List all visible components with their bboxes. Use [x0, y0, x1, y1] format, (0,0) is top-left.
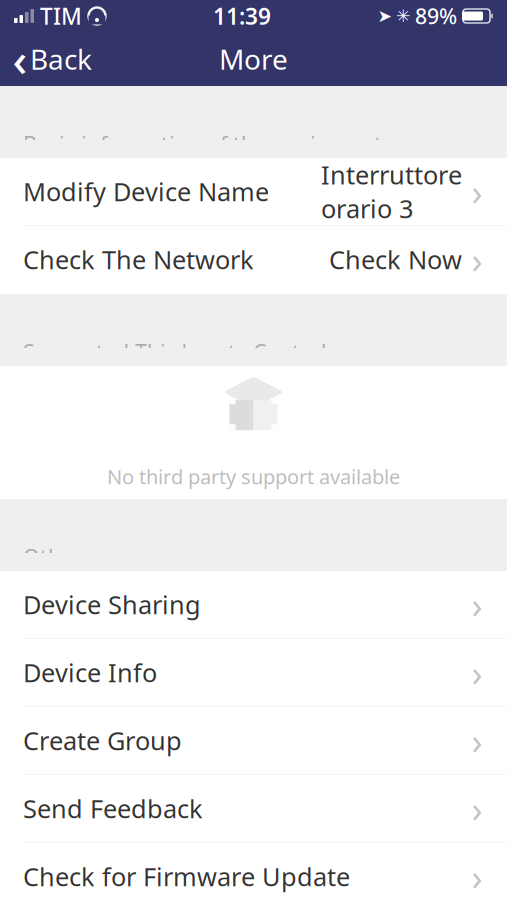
staticText: TIM [40, 1, 82, 31]
button[interactable]: Send Feedback [0, 775, 507, 843]
staticText: › [471, 581, 482, 628]
staticText: › [471, 236, 482, 283]
staticText: › [471, 785, 482, 832]
staticText: ‹ [12, 29, 27, 89]
staticText: Check The Network [23, 243, 254, 276]
staticText: Send Feedback [23, 792, 203, 825]
staticText: Supported Third-party Control [23, 338, 327, 366]
staticText: › [471, 853, 482, 900]
staticText: Check Now [329, 243, 462, 276]
staticText: › [471, 168, 482, 215]
staticText: Device Info [23, 656, 157, 689]
staticText: Device Sharing [23, 588, 201, 621]
staticText: ➤ [377, 6, 392, 26]
button[interactable]: Modify Device Name [0, 158, 507, 226]
staticText: Interruttore orario 3 [321, 158, 462, 225]
staticText: 11:39 [213, 1, 271, 31]
button[interactable]: ‹ [0, 32, 104, 86]
button[interactable]: Create Group [0, 707, 507, 775]
staticText: › [471, 649, 482, 696]
staticText: No third party support available [107, 463, 400, 490]
staticText: Check for Firmware Update [23, 860, 350, 893]
staticText: Create Group [23, 724, 182, 757]
button[interactable]: Device Info [0, 639, 507, 707]
staticText: Basic information of the equipment [23, 130, 382, 158]
button[interactable]: Device Sharing [0, 571, 507, 639]
staticText: Other [23, 543, 82, 571]
staticText: Modify Device Name [23, 175, 269, 208]
button[interactable]: Check for Firmware Update [0, 843, 507, 900]
staticText: 89% [415, 2, 457, 30]
staticText: › [471, 717, 482, 764]
staticText: Back [30, 40, 92, 78]
staticText: More [219, 40, 288, 78]
staticText: ✳ [396, 6, 411, 26]
button[interactable]: Check The Network [0, 226, 507, 294]
